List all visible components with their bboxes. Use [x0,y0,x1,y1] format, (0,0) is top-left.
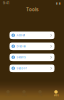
button[interactable]: Display [9,42,54,50]
staticText: 9:41 [3,1,9,5]
button[interactable]: More [48,88,64,98]
staticText: Tools [26,7,38,12]
staticText: Home [5,94,11,97]
staticText: Chat [37,94,42,97]
staticText: Security [16,56,25,59]
button[interactable]: Home [0,88,16,98]
button[interactable]: Account [9,31,54,39]
button[interactable]: Feed [16,88,32,98]
button[interactable]: Chat [32,88,48,98]
staticText: Display [16,45,25,48]
button[interactable]: Support [9,64,54,72]
staticText: Feed [22,94,26,97]
staticText: Account [16,34,25,37]
staticText: ▮ ▮ [56,2,61,5]
staticText: Support [16,67,27,70]
staticText: More [53,94,58,97]
button[interactable]: Security [9,53,54,61]
